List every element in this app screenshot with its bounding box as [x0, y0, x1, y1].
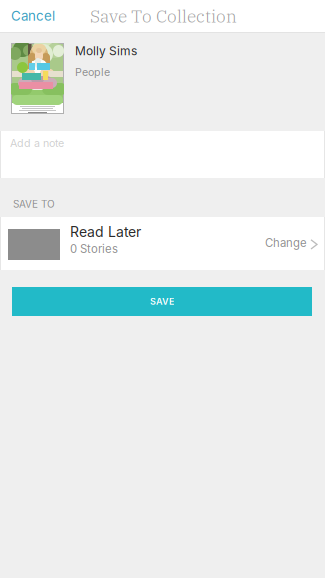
staticText: Cancel	[11, 8, 55, 24]
staticText: Molly Sims	[75, 44, 137, 58]
staticText: Save To Collection	[90, 5, 237, 27]
staticText: SAVE	[150, 296, 174, 307]
button[interactable]: Read Later	[0, 217, 325, 270]
staticText: SAVE TO	[13, 198, 55, 210]
button[interactable]: SAVE	[12, 287, 312, 316]
staticText: Change	[265, 236, 307, 250]
staticText: 0 Stories	[70, 242, 118, 256]
staticText: Read Later	[70, 223, 141, 240]
staticText: Add a note	[10, 136, 64, 149]
button[interactable]: Cancel	[11, 8, 71, 24]
staticText: People	[75, 65, 110, 78]
